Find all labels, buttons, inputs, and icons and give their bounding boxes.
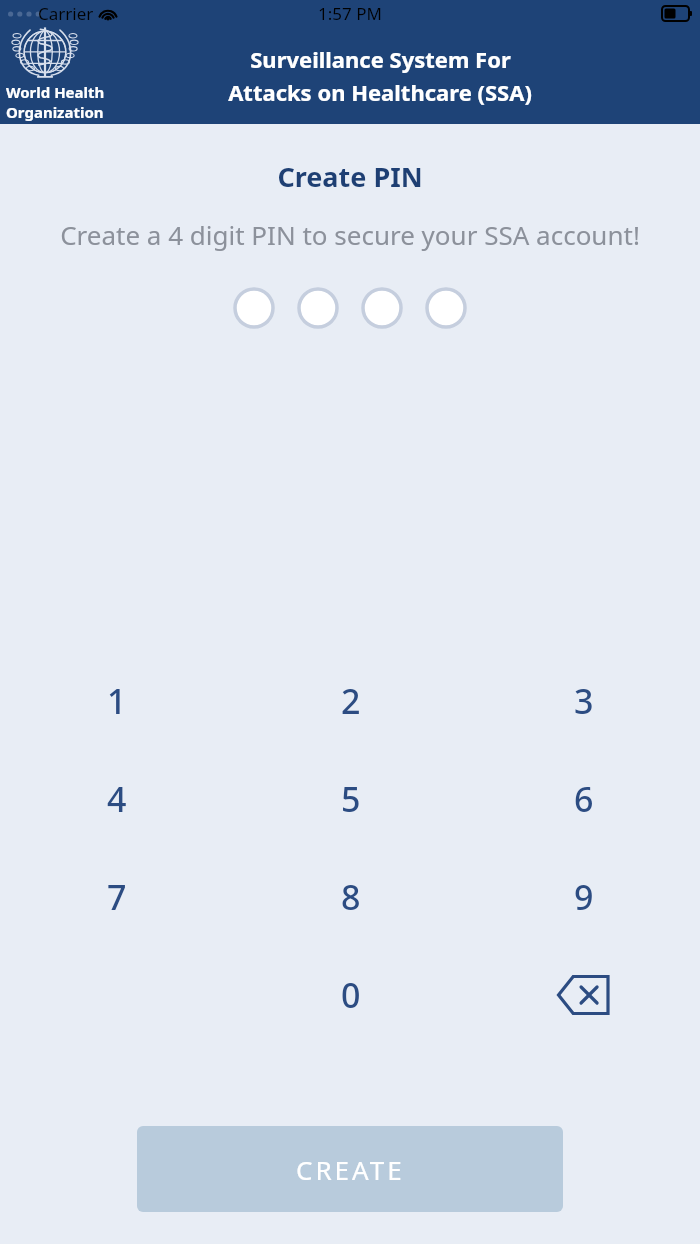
- button[interactable]: 4: [0, 750, 234, 848]
- button[interactable]: 6: [467, 750, 700, 848]
- staticText: Attacks on Healthcare (SSA): [228, 77, 532, 107]
- staticText: 0: [341, 972, 361, 1018]
- button[interactable]: 2: [234, 652, 467, 750]
- staticText: 7: [107, 874, 127, 920]
- staticText: Organization: [6, 102, 104, 122]
- button[interactable]: 3: [467, 652, 700, 750]
- staticText: 4: [107, 776, 127, 822]
- staticText: Create PIN: [0, 158, 700, 195]
- button[interactable]: 9: [467, 848, 700, 946]
- button[interactable]: Backspace: [467, 946, 700, 1044]
- staticText: 1: [107, 678, 127, 724]
- staticText: 9: [574, 874, 594, 920]
- staticText: World Health: [6, 82, 105, 102]
- staticText: Carrier: [38, 2, 94, 25]
- staticText: 8: [341, 874, 361, 920]
- staticText: 5: [341, 776, 361, 822]
- button[interactable]: 8: [234, 848, 467, 946]
- staticText: Surveillance System For: [250, 44, 511, 74]
- staticText: 6: [574, 776, 594, 822]
- staticText: 2: [341, 678, 361, 724]
- staticText: 1:57 PM: [318, 2, 382, 25]
- button[interactable]: CREATE: [137, 1126, 563, 1212]
- staticText: 3: [574, 678, 594, 724]
- staticText: CREATE: [296, 1152, 405, 1187]
- button[interactable]: 1: [0, 652, 234, 750]
- button[interactable]: 0: [234, 946, 467, 1044]
- button[interactable]: 5: [234, 750, 467, 848]
- staticText: Create a 4 digit PIN to secure your SSA …: [20, 217, 680, 252]
- button[interactable]: 7: [0, 848, 234, 946]
